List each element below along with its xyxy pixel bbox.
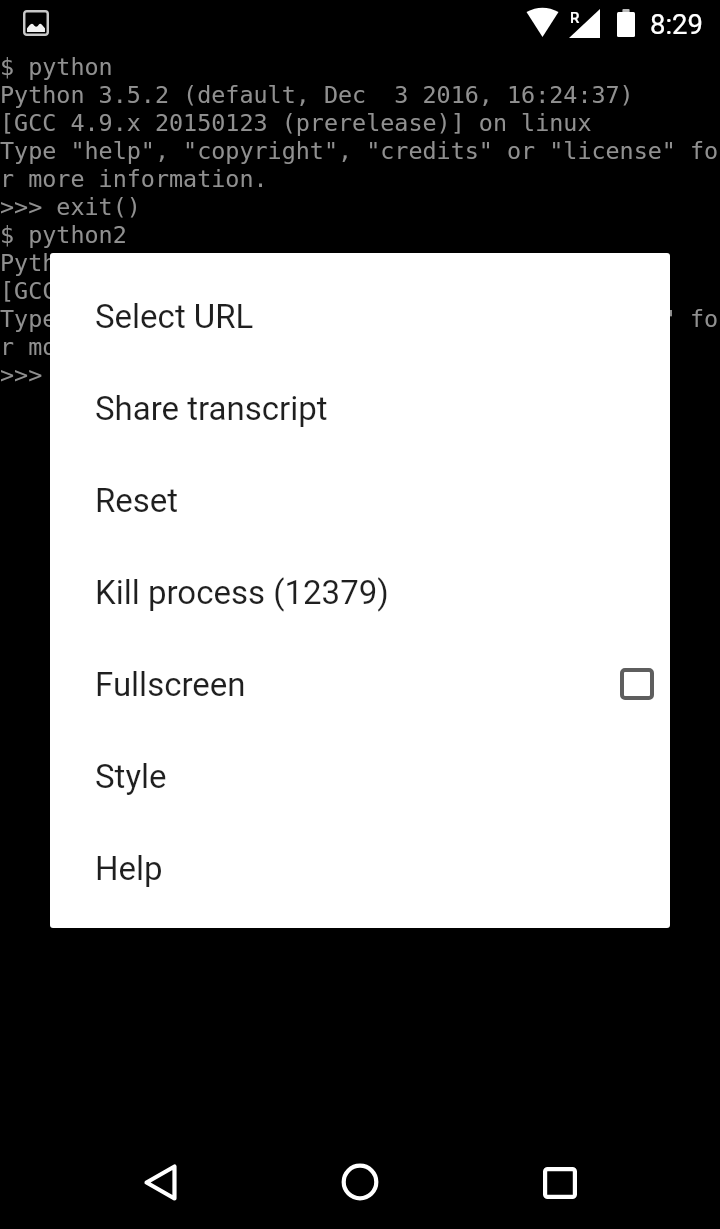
staticText: Python 2.7.12 (default, Dec 4 2016, 12:3… — [0, 249, 648, 276]
button[interactable]: Select URL — [50, 270, 670, 362]
staticText: Type "help", "copyright", "credits" or "… — [0, 305, 719, 332]
staticText: Kill process (12379) — [95, 573, 389, 612]
button[interactable]: Reset — [50, 454, 670, 546]
staticText: Select URL — [95, 297, 254, 336]
button[interactable]: Style — [50, 730, 670, 822]
staticText: [GCC 4.9.x 20150123 (prerelease)] on lin… — [0, 109, 592, 136]
button[interactable]: Share transcript — [50, 362, 670, 454]
button[interactable]: Help — [50, 822, 670, 914]
staticText: >>> exit() — [0, 193, 141, 220]
staticText: >>> — [0, 361, 57, 388]
staticText: $ python — [0, 53, 113, 80]
button[interactable]: Recent apps — [520, 1143, 600, 1223]
staticText: Share transcript — [95, 389, 328, 428]
staticText: R — [570, 9, 580, 27]
button[interactable]: Home — [320, 1142, 400, 1222]
button[interactable]: Kill process (12379) — [50, 546, 670, 638]
staticText: Fullscreen — [95, 665, 246, 704]
staticText: 8:29 — [650, 8, 704, 40]
button[interactable]: Fullscreen — [50, 638, 670, 730]
staticText: Style — [95, 757, 167, 796]
staticText: Help — [95, 849, 163, 888]
button[interactable]: Back — [120, 1142, 200, 1222]
staticText: [GCC 4.9.x 20150123 (prerelease)] on lin… — [0, 277, 606, 304]
staticText: r more information. — [0, 333, 268, 360]
staticText: r more information. — [0, 165, 268, 192]
staticText: Type "help", "copyright", "credits" or "… — [0, 137, 719, 164]
staticText: Reset — [95, 481, 179, 520]
staticText: $ python2 — [0, 221, 127, 248]
staticText: Python 3.5.2 (default, Dec 3 2016, 16:24… — [0, 81, 634, 108]
